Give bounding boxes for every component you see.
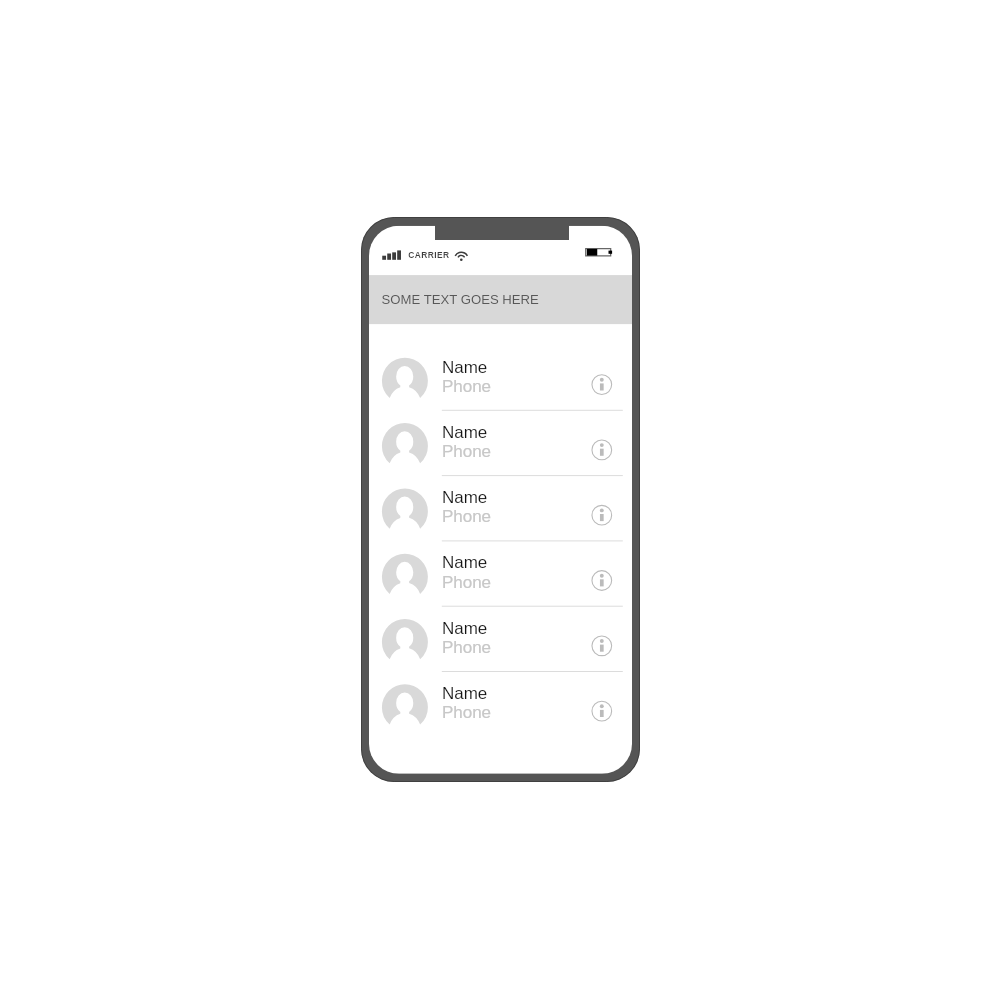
button[interactable]: More info <box>591 570 612 591</box>
staticText: Name <box>442 423 488 442</box>
staticText: Phone <box>442 377 492 396</box>
button[interactable]: More info <box>591 701 612 722</box>
button[interactable]: Name <box>369 541 632 606</box>
button[interactable]: More info <box>591 439 612 460</box>
staticText: Name <box>442 488 488 507</box>
button[interactable]: Name <box>369 345 632 410</box>
button[interactable]: More info <box>591 374 612 395</box>
staticText: Phone <box>442 507 492 526</box>
button[interactable]: Name <box>369 410 632 475</box>
staticText: Phone <box>442 442 492 461</box>
staticText: Name <box>442 358 488 377</box>
button[interactable]: SOME TEXT GOES HERE <box>369 275 632 324</box>
staticText: CARRIER <box>408 250 450 259</box>
button[interactable]: Name <box>369 672 632 737</box>
staticText: Phone <box>442 573 492 592</box>
button[interactable]: Name <box>369 606 632 671</box>
staticText: Phone <box>442 703 492 722</box>
button[interactable]: Name <box>369 476 632 541</box>
staticText: SOME TEXT GOES HERE <box>382 292 540 307</box>
button[interactable]: More info <box>591 635 612 656</box>
other: Wi-Fi <box>454 249 469 261</box>
staticText: Phone <box>442 638 492 657</box>
other: Battery <box>585 248 614 258</box>
staticText: Name <box>442 553 488 572</box>
button[interactable]: More info <box>591 505 612 526</box>
staticText: Name <box>442 619 488 638</box>
staticText: Name <box>442 684 488 703</box>
other: Cellular signal <box>382 250 401 260</box>
